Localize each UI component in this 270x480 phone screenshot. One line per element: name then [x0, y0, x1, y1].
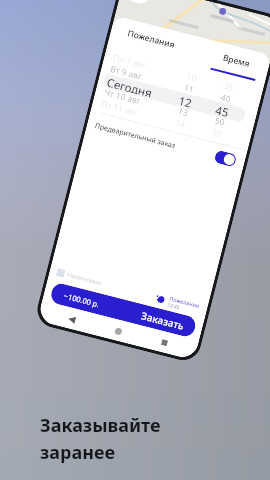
button[interactable]: Наличными: [56, 268, 103, 287]
staticText: Пт 11 авг: [100, 98, 140, 119]
staticText: Предварительный заказ: [94, 121, 216, 161]
button[interactable]: Home: [111, 324, 125, 338]
button[interactable]: Чт 10 авг: [103, 86, 166, 113]
button[interactable]: Время: [211, 41, 262, 79]
button[interactable]: Пт 11 авг: [100, 98, 163, 125]
button[interactable]: 12: [166, 90, 206, 111]
button[interactable]: Pre-order toggle: [214, 150, 237, 167]
staticText: 40: [219, 91, 232, 105]
staticText: 50: [213, 114, 226, 129]
staticText: Наличными: [66, 271, 103, 287]
button[interactable]: Вт 9 авг: [109, 63, 172, 90]
staticText: ~100.00 р.: [63, 291, 101, 309]
staticText: Пн 7 авг: [112, 51, 148, 71]
staticText: 45: [215, 102, 231, 117]
button[interactable]: 13: [163, 102, 203, 123]
button[interactable]: Пн 7 авг: [112, 51, 175, 78]
staticText: Заказать: [140, 308, 186, 333]
staticText: 14: [174, 117, 186, 131]
button[interactable]: Back: [64, 312, 79, 326]
staticText: 13: [177, 105, 189, 119]
button[interactable]: ~100.00 р.: [49, 282, 198, 338]
staticText: 55: [211, 126, 223, 140]
button[interactable]: 14: [160, 113, 200, 134]
staticText: Вт 9 авг: [109, 63, 144, 83]
button[interactable]: Menu: [125, 0, 153, 6]
button[interactable]: Сегодня: [106, 75, 169, 102]
button[interactable]: Пожелания: [155, 291, 200, 315]
staticText: 12:45: [167, 301, 180, 310]
button[interactable]: 40: [206, 88, 246, 109]
staticText: заранее: [40, 440, 115, 465]
button[interactable]: 45: [203, 99, 243, 120]
button[interactable]: 11: [169, 78, 209, 99]
staticText: 12: [178, 93, 194, 108]
staticText: Сегодня: [106, 75, 154, 98]
staticText: 11: [183, 82, 195, 96]
staticText: Пожелания: [169, 295, 201, 309]
staticText: Время: [221, 51, 251, 70]
staticText: Пожелания: [126, 27, 177, 51]
button[interactable]: 55: [197, 123, 237, 144]
button[interactable]: Recents: [157, 335, 172, 350]
staticText: Заказывайте: [40, 413, 161, 438]
staticText: 35: [222, 80, 235, 94]
button[interactable]: 10: [172, 67, 212, 88]
staticText: Чт 10 авг: [103, 86, 143, 107]
button[interactable]: 50: [200, 111, 240, 132]
staticText: 10: [186, 70, 198, 84]
button[interactable]: 35: [209, 76, 249, 97]
